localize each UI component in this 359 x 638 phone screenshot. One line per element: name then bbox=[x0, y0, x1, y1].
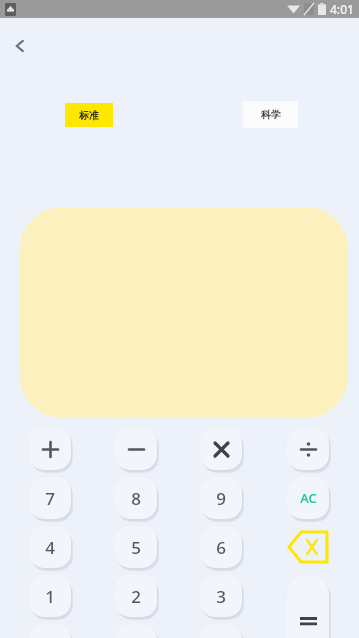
staticText: 科学 bbox=[261, 108, 281, 121]
button[interactable]: 科学 bbox=[243, 101, 298, 128]
button[interactable]: 9 bbox=[200, 477, 242, 519]
button[interactable] bbox=[29, 428, 71, 470]
button[interactable]: 7 bbox=[29, 477, 71, 519]
button[interactable] bbox=[200, 428, 242, 470]
button[interactable]: 4 bbox=[29, 526, 71, 568]
button[interactable] bbox=[287, 575, 329, 638]
staticText: 9 bbox=[216, 487, 226, 510]
staticText: 7 bbox=[45, 487, 55, 510]
button[interactable]: 6 bbox=[200, 526, 242, 568]
button[interactable] bbox=[115, 428, 157, 470]
staticText: 2 bbox=[131, 585, 141, 608]
button[interactable]: 标准 bbox=[65, 103, 113, 127]
staticText: 4 bbox=[45, 536, 55, 559]
staticText: 6 bbox=[216, 536, 226, 559]
button[interactable]: 8 bbox=[115, 477, 157, 519]
button[interactable] bbox=[287, 428, 329, 470]
button[interactable]: 2 bbox=[115, 575, 157, 617]
button[interactable]: 3 bbox=[200, 575, 242, 617]
staticText: 5 bbox=[131, 536, 141, 559]
button[interactable]: 1 bbox=[29, 575, 71, 617]
staticText: 标准 bbox=[79, 109, 99, 122]
button[interactable]: Backspace bbox=[287, 526, 329, 568]
button[interactable]: Back bbox=[0, 26, 40, 66]
button[interactable]: 5 bbox=[115, 526, 157, 568]
staticText: 4:01 bbox=[330, 1, 354, 17]
staticText: AC bbox=[300, 489, 317, 507]
staticText: 3 bbox=[216, 585, 226, 608]
button[interactable]: AC bbox=[287, 477, 329, 519]
staticText: 8 bbox=[131, 487, 141, 510]
staticText: 1 bbox=[45, 585, 55, 608]
